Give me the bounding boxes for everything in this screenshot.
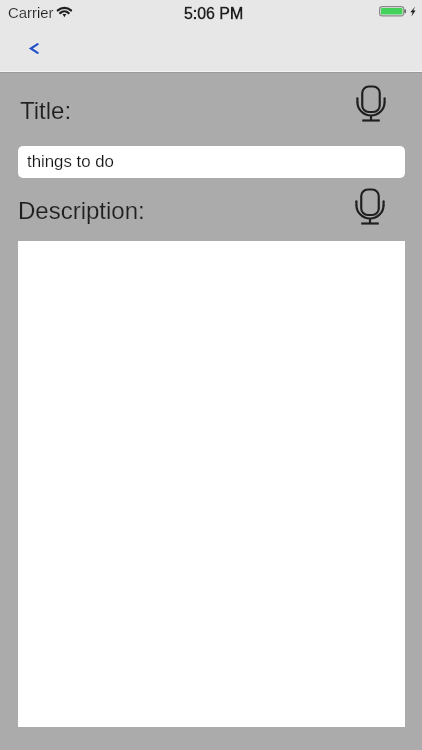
staticText: Title: — [20, 97, 72, 124]
button[interactable]: Back — [14, 32, 52, 66]
staticText: Carrier — [8, 5, 54, 22]
button[interactable]: Record title by voice — [353, 82, 389, 128]
staticText: things to do — [27, 152, 114, 171]
button[interactable]: Record description by voice — [352, 185, 388, 231]
staticText: 5:06 PM — [184, 5, 244, 23]
button[interactable]: things to do — [18, 146, 405, 178]
staticText: Description: — [18, 197, 145, 224]
